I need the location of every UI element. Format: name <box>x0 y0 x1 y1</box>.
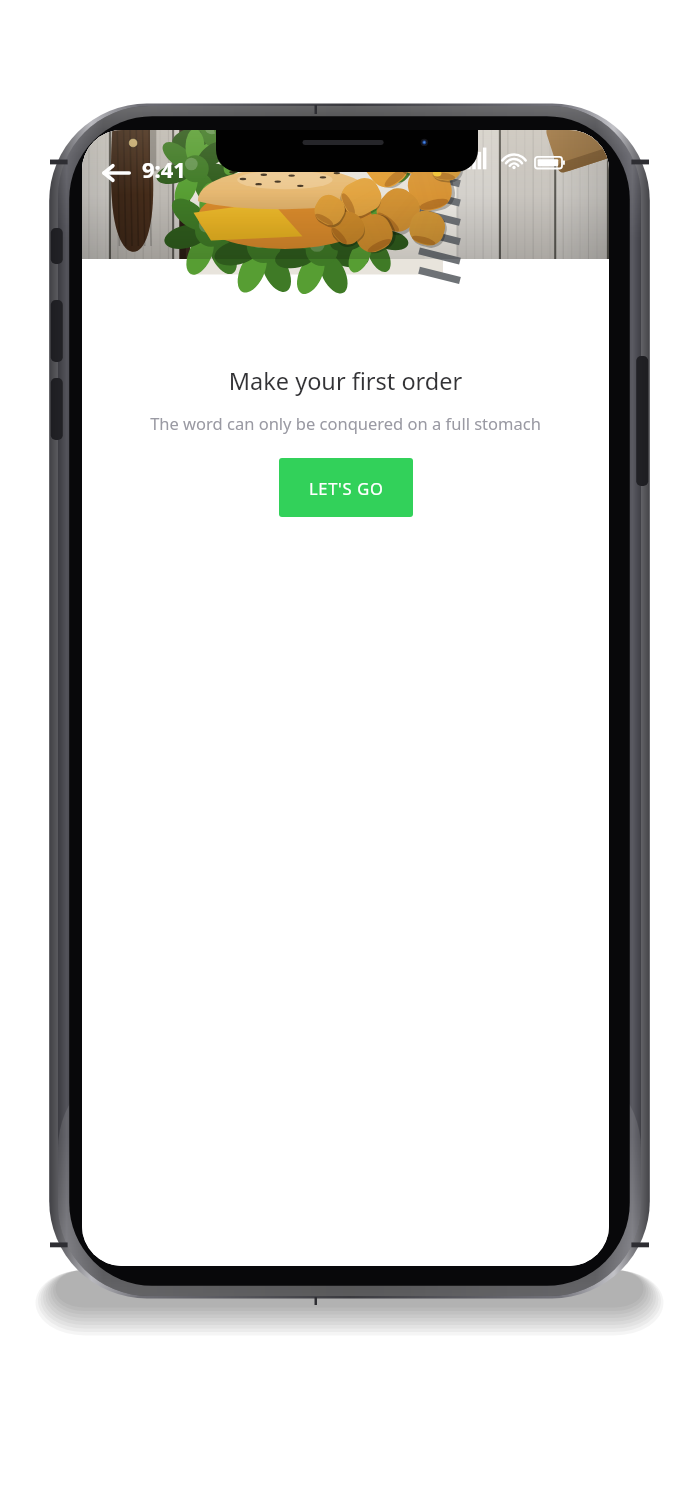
button[interactable]: Back <box>100 156 134 190</box>
staticText: 9:41 <box>142 154 186 184</box>
staticText: LET'S GO <box>309 477 384 499</box>
staticText: The word can only be conquered on a full… <box>82 412 609 434</box>
button[interactable]: LET'S GO <box>279 458 413 517</box>
staticText: Make your first order <box>82 365 609 397</box>
